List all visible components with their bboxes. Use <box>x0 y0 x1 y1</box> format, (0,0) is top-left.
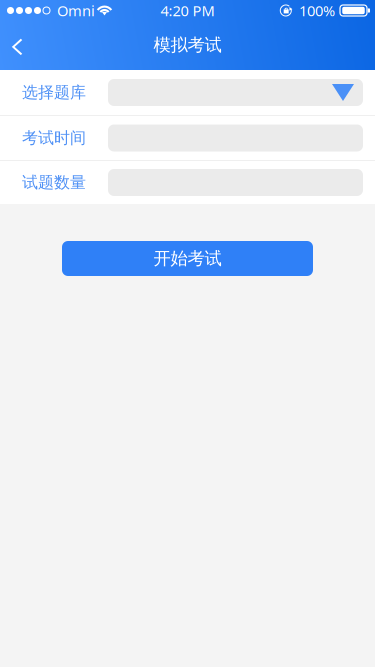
staticText: 100% <box>299 1 335 20</box>
button[interactable]: Back <box>0 32 44 57</box>
button[interactable]: 开始考试 <box>62 241 313 276</box>
button[interactable]: 选择题库 <box>0 70 375 115</box>
staticText: Omni <box>57 1 95 20</box>
staticText: 考试时间 <box>22 128 86 148</box>
button[interactable]: 试题数量 <box>0 161 375 204</box>
staticText: 模拟考试 <box>153 34 221 56</box>
staticText: 试题数量 <box>22 173 86 192</box>
staticText: 4:20 PM <box>160 1 214 20</box>
button[interactable]: 考试时间 <box>0 116 375 160</box>
staticText: 开始考试 <box>153 248 221 269</box>
staticText: 选择题库 <box>22 83 86 102</box>
